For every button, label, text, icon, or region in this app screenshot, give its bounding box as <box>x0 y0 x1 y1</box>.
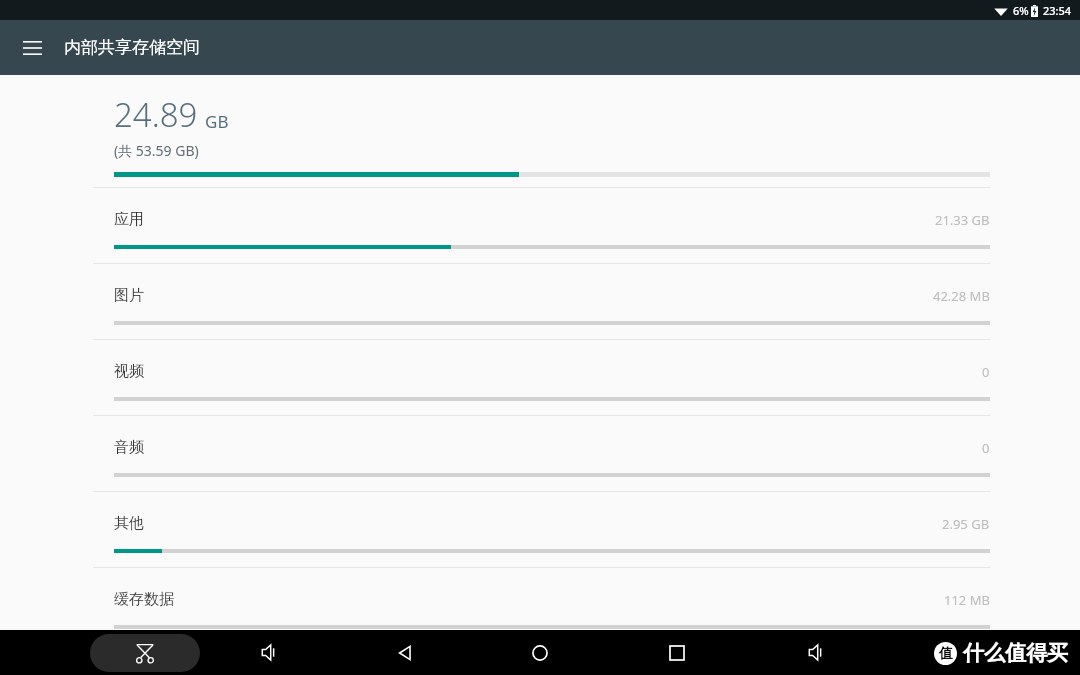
button[interactable]: 图片 <box>93 264 990 339</box>
staticText: 2.95 GB <box>942 515 990 533</box>
button[interactable]: 视频 <box>93 340 990 415</box>
button[interactable]: Volume up <box>789 630 837 675</box>
button[interactable]: Volume down <box>242 630 290 675</box>
staticText: 6% <box>1013 3 1029 18</box>
staticText: 0 <box>982 363 990 381</box>
staticText: 21.33 GB <box>935 211 990 229</box>
staticText: 值 <box>939 645 953 663</box>
staticText: 112 MB <box>944 591 990 609</box>
staticText: 0 <box>982 439 990 457</box>
staticText: 其他 <box>114 514 144 533</box>
staticText: 视频 <box>114 362 144 381</box>
button[interactable]: Recent apps <box>653 630 701 675</box>
staticText: 内部共享存储空间 <box>64 37 200 58</box>
staticText: 24.89 <box>114 92 198 137</box>
staticText: 应用 <box>114 210 144 229</box>
button[interactable]: Open navigation menu <box>10 26 54 70</box>
button[interactable]: Screenshot <box>90 634 200 672</box>
staticText: 什么值得买 <box>963 640 1068 666</box>
staticText: (共 53.59 GB) <box>114 141 199 160</box>
staticText: 缓存数据 <box>114 590 174 609</box>
staticText: 音频 <box>114 438 144 457</box>
button[interactable]: 其他 <box>93 492 990 567</box>
button[interactable]: 音频 <box>93 416 990 491</box>
staticText: GB <box>205 110 229 133</box>
button[interactable]: Back <box>381 630 429 675</box>
staticText: 23:54 <box>1043 3 1072 18</box>
staticText: 42.28 MB <box>933 287 990 305</box>
button[interactable]: Home <box>516 630 564 675</box>
button[interactable]: 应用 <box>93 188 990 263</box>
staticText: 图片 <box>114 286 144 305</box>
button[interactable]: 缓存数据 <box>93 568 990 643</box>
